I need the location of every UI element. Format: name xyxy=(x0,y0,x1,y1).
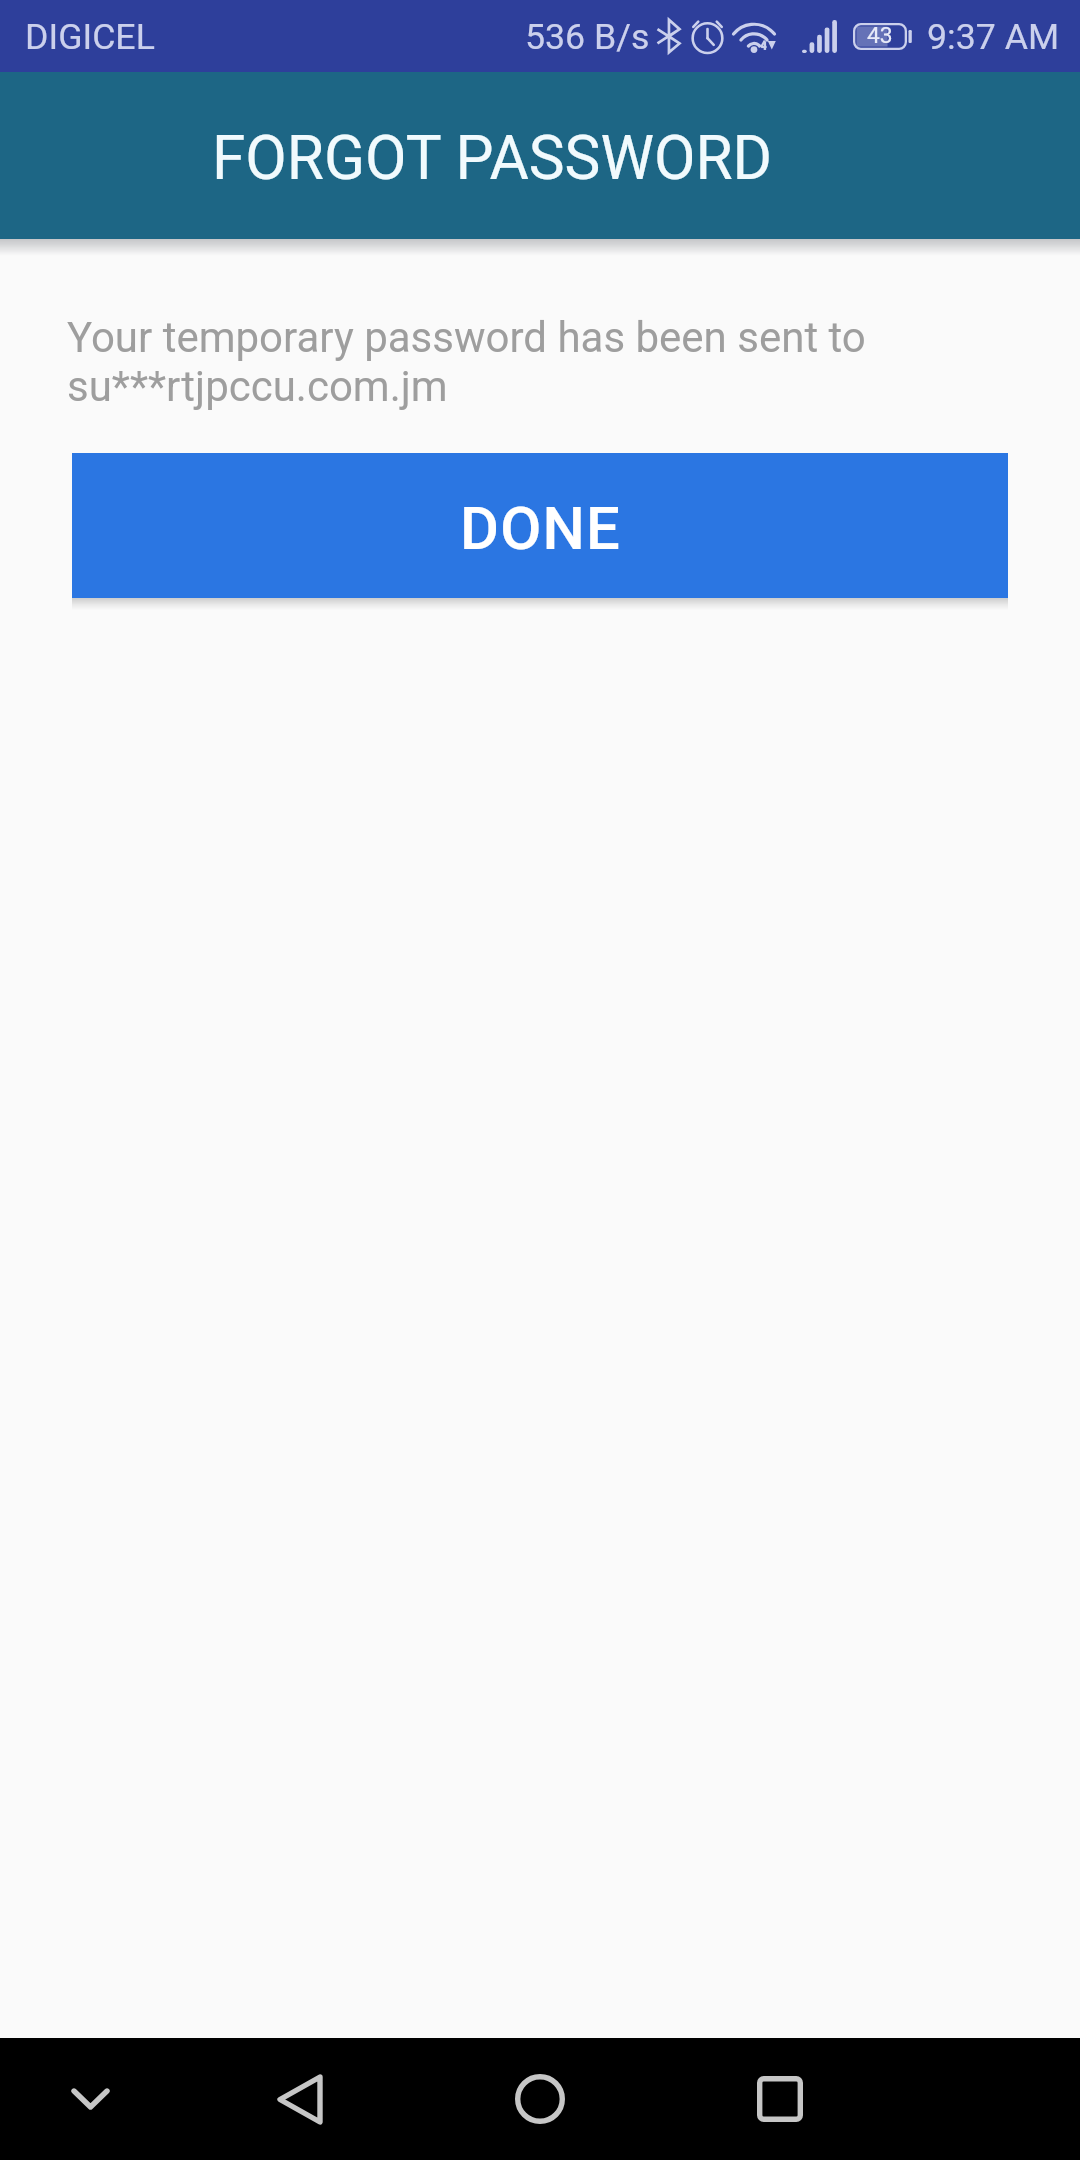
staticText: Your temporary password has been sent to… xyxy=(67,313,937,411)
staticText: DONE xyxy=(460,494,621,564)
staticText: 536 B/s xyxy=(525,16,650,58)
button[interactable]: Back xyxy=(240,2038,360,2160)
button[interactable]: Hide keyboard xyxy=(30,2038,150,2160)
staticText: FORGOT PASSWORD xyxy=(212,123,773,194)
staticText: DIGICEL xyxy=(25,16,155,58)
staticText: 43 xyxy=(867,22,893,49)
button[interactable]: DONE xyxy=(72,453,1008,598)
button[interactable]: Recent apps xyxy=(720,2038,840,2160)
button[interactable]: Home xyxy=(480,2038,600,2160)
staticText: 9:37 AM xyxy=(927,16,1060,58)
